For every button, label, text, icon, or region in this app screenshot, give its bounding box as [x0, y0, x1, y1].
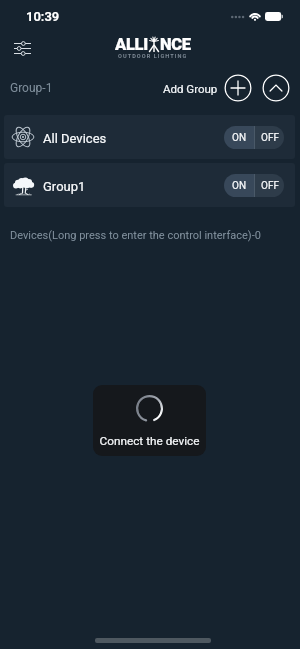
button[interactable]: Add Group [161, 78, 220, 99]
staticText: OFF [261, 180, 279, 192]
button[interactable]: OFF [255, 126, 284, 149]
staticText: Group1 [43, 179, 86, 194]
button[interactable]: OFF [255, 174, 284, 197]
staticText: 10:39 [26, 9, 60, 24]
button[interactable]: All Devices [4, 115, 295, 159]
staticText: ON [232, 180, 247, 192]
staticText: NCE [160, 35, 191, 54]
button[interactable]: ON [224, 174, 254, 197]
staticText: Group-1 [10, 81, 53, 95]
button[interactable]: Group1 [4, 163, 295, 207]
staticText: All Devices [43, 131, 107, 146]
button[interactable]: Collapse group [262, 74, 290, 102]
button[interactable]: ON [224, 126, 254, 149]
button[interactable]: Add Group [224, 74, 252, 102]
staticText: ALLI [115, 35, 148, 54]
staticText: OFF [261, 132, 279, 144]
staticText: ON [232, 132, 247, 144]
staticText: Devices(Long press to enter the control … [10, 229, 261, 242]
button[interactable]: Settings [6, 32, 38, 64]
staticText: Connect the device [99, 434, 200, 448]
staticText: OUTDOOR LIGHTING [118, 53, 188, 60]
